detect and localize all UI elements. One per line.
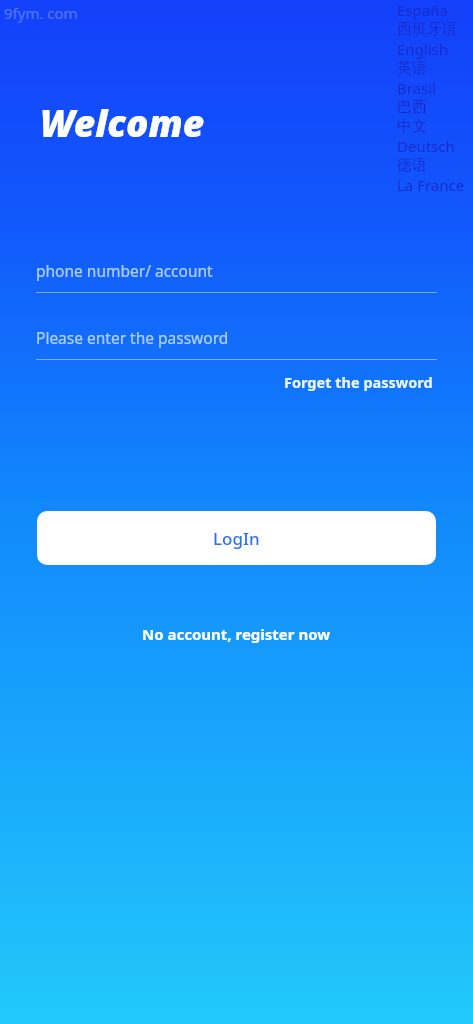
- staticText: 德语: [397, 156, 427, 175]
- staticText: 西班牙语: [397, 20, 457, 39]
- staticText: No account, register now: [142, 624, 331, 644]
- staticText: 巴西: [397, 98, 427, 117]
- button[interactable]: Please enter the password: [36, 315, 437, 359]
- staticText: Brasil: [397, 78, 436, 98]
- button[interactable]: No account, register now: [136, 618, 337, 650]
- staticText: 中文: [397, 117, 427, 136]
- button[interactable]: Brasil: [397, 78, 436, 98]
- staticText: English: [397, 39, 449, 59]
- button[interactable]: Forget the password: [280, 368, 437, 396]
- staticText: España: [397, 0, 448, 20]
- staticText: Please enter the password: [36, 327, 229, 348]
- staticText: LogIn: [213, 527, 260, 550]
- staticText: Deutsch: [397, 136, 455, 156]
- button[interactable]: phone number/ account: [36, 248, 437, 292]
- button[interactable]: 西班牙语: [397, 20, 457, 39]
- button[interactable]: 英语: [397, 59, 427, 78]
- staticText: Forget the password: [284, 372, 433, 392]
- button[interactable]: 德语: [397, 156, 427, 175]
- button[interactable]: 巴西: [397, 98, 427, 117]
- button[interactable]: LogIn: [37, 511, 436, 565]
- button[interactable]: Deutsch: [397, 136, 455, 156]
- staticText: 9fym. com: [4, 3, 78, 23]
- staticText: Welcome: [40, 97, 205, 147]
- staticText: 英语: [397, 59, 427, 78]
- staticText: phone number/ account: [36, 260, 213, 281]
- staticText: La France: [397, 175, 465, 195]
- button[interactable]: 中文: [397, 117, 427, 136]
- button[interactable]: España: [397, 0, 448, 20]
- button[interactable]: English: [397, 39, 449, 59]
- button[interactable]: La France: [397, 175, 465, 195]
